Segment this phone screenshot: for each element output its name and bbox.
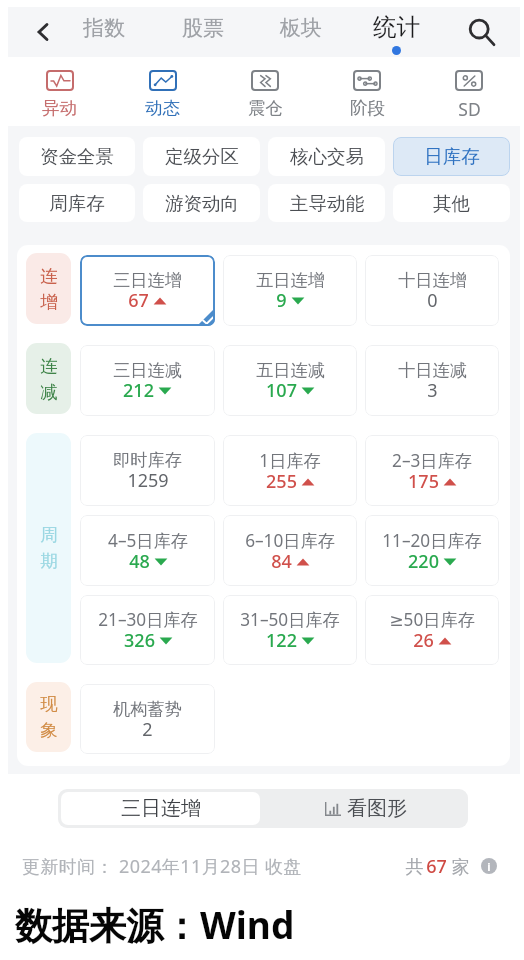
staticText: 主导动能 <box>290 192 364 215</box>
button[interactable]: 机构蓄势 <box>80 684 215 754</box>
button[interactable]: 核心交易 <box>268 137 385 176</box>
staticText: 84 <box>271 549 292 574</box>
button[interactable]: 三日连增 <box>80 255 215 326</box>
staticText: 十日连减 <box>398 359 467 381</box>
button[interactable]: 游资动向 <box>143 184 260 222</box>
button[interactable]: 指数 <box>72 7 136 57</box>
button[interactable]: 统计 <box>364 7 428 57</box>
staticText: 31–50日库存 <box>240 608 340 631</box>
staticText: 减 <box>40 381 58 403</box>
staticText: 122 <box>266 628 297 653</box>
staticText: 震仓 <box>248 97 283 119</box>
staticText: 机构蓄势 <box>113 698 182 720</box>
button[interactable]: 动态 <box>111 57 214 126</box>
button[interactable]: 其他 <box>393 184 510 222</box>
staticText: 象 <box>40 719 58 741</box>
staticText: 67 <box>128 288 149 313</box>
button[interactable]: 看图形 <box>263 789 468 828</box>
button[interactable]: 周库存 <box>19 184 135 222</box>
button[interactable]: 震仓 <box>214 57 316 126</box>
button[interactable]: 2–3日库存 <box>365 435 499 506</box>
staticText: ≥50日库存 <box>389 608 475 631</box>
staticText: 家 <box>447 854 470 879</box>
button[interactable]: Info <box>481 858 497 874</box>
staticText: 255 <box>266 469 297 494</box>
staticText: 2–3日库存 <box>392 449 472 472</box>
button[interactable]: SD <box>418 57 520 126</box>
staticText: 11–20日库存 <box>382 529 482 552</box>
staticText: 3 <box>427 378 438 403</box>
staticText: 股票 <box>182 15 224 41</box>
staticText: 十日连增 <box>398 269 467 291</box>
button[interactable]: 即时库存 <box>80 435 215 506</box>
staticText: 统计 <box>373 12 420 42</box>
staticText: 1日库存 <box>259 449 321 472</box>
staticText: 连 <box>40 355 58 377</box>
staticText: 核心交易 <box>290 145 364 168</box>
staticText: 2 <box>142 717 153 742</box>
staticText: 三日连增 <box>113 269 182 291</box>
button[interactable]: 异动 <box>8 57 111 126</box>
staticText: 数据来源：Wind <box>15 899 295 950</box>
staticText: 三日连增 <box>121 796 201 821</box>
staticText: 周 <box>40 524 58 546</box>
staticText: 共 <box>403 854 426 879</box>
button[interactable]: 31–50日库存 <box>223 595 357 665</box>
button[interactable]: 4–5日库存 <box>80 515 215 586</box>
staticText: 游资动向 <box>165 192 239 215</box>
staticText: 动态 <box>145 97 180 119</box>
staticText: 连 <box>40 265 58 287</box>
staticText: 212 <box>123 378 154 403</box>
staticText: 175 <box>408 469 439 494</box>
button[interactable]: Search <box>456 7 506 57</box>
staticText: 五日连减 <box>256 359 325 381</box>
staticText: 更新时间： 2024年11月28日 收盘 <box>22 854 302 879</box>
button[interactable]: 资金全景 <box>19 137 135 176</box>
staticText: 其他 <box>433 192 470 215</box>
staticText: 周库存 <box>49 192 105 215</box>
staticText: 五日连增 <box>256 269 325 291</box>
button[interactable]: 6–10日库存 <box>223 515 357 586</box>
staticText: 1259 <box>127 468 169 493</box>
button[interactable]: 主导动能 <box>268 184 385 222</box>
button[interactable]: 日库存 <box>393 137 510 176</box>
staticText: 指数 <box>83 15 125 41</box>
button[interactable]: 股票 <box>171 7 235 57</box>
staticText: 107 <box>266 378 297 403</box>
staticText: 三日连减 <box>113 359 182 381</box>
staticText: 板块 <box>280 15 322 41</box>
staticText: 增 <box>40 291 58 313</box>
staticText: 326 <box>124 628 155 653</box>
staticText: 9 <box>276 288 287 313</box>
staticText: 26 <box>413 628 434 653</box>
staticText: 21–30日库存 <box>98 608 198 631</box>
button[interactable]: ≥50日库存 <box>365 595 499 665</box>
staticText: 异动 <box>42 97 77 119</box>
staticText: 看图形 <box>347 796 407 821</box>
staticText: i <box>487 859 491 874</box>
button[interactable]: 三日连增 <box>61 792 260 825</box>
staticText: 0 <box>427 288 438 313</box>
staticText: 期 <box>40 550 58 572</box>
button[interactable]: 五日连增 <box>223 255 357 326</box>
staticText: 定级分区 <box>165 145 239 168</box>
button[interactable]: 阶段 <box>316 57 418 126</box>
button[interactable]: 1日库存 <box>223 435 357 506</box>
staticText: 4–5日库存 <box>108 529 188 552</box>
button[interactable]: 五日连减 <box>223 345 357 416</box>
staticText: 现 <box>40 693 58 715</box>
button[interactable]: Back <box>19 7 67 57</box>
staticText: 67 <box>426 854 447 879</box>
button[interactable]: 十日连增 <box>365 255 499 326</box>
button[interactable]: 11–20日库存 <box>365 515 499 586</box>
button[interactable]: 三日连减 <box>80 345 215 416</box>
staticText: 阶段 <box>350 97 385 119</box>
staticText: 资金全景 <box>40 145 114 168</box>
button[interactable]: 21–30日库存 <box>80 595 215 665</box>
button[interactable]: 定级分区 <box>143 137 260 176</box>
staticText: 6–10日库存 <box>245 529 335 552</box>
button[interactable]: 十日连减 <box>365 345 499 416</box>
staticText: 220 <box>408 549 439 574</box>
button[interactable]: 板块 <box>269 7 333 57</box>
staticText: 即时库存 <box>113 449 182 471</box>
